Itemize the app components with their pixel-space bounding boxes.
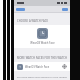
staticText: For more watch face options try your mob… (17, 75, 67, 78)
button[interactable]: WearOS Watch Face (14, 25, 70, 48)
button[interactable]: WearOS Watch Face (14, 62, 70, 71)
staticText: CHOOSE A WATCH FACE (17, 19, 49, 23)
button[interactable]: Cancel (16, 8, 25, 11)
staticText: MORE WATCH FACES FOR THIS WATCH (17, 56, 67, 60)
button[interactable]: Add watch face (62, 64, 67, 69)
staticText: WearOS Watch Face (25, 65, 62, 69)
staticText: WearOS Watch Face (30, 41, 55, 45)
button[interactable]: Done (62, 8, 68, 11)
